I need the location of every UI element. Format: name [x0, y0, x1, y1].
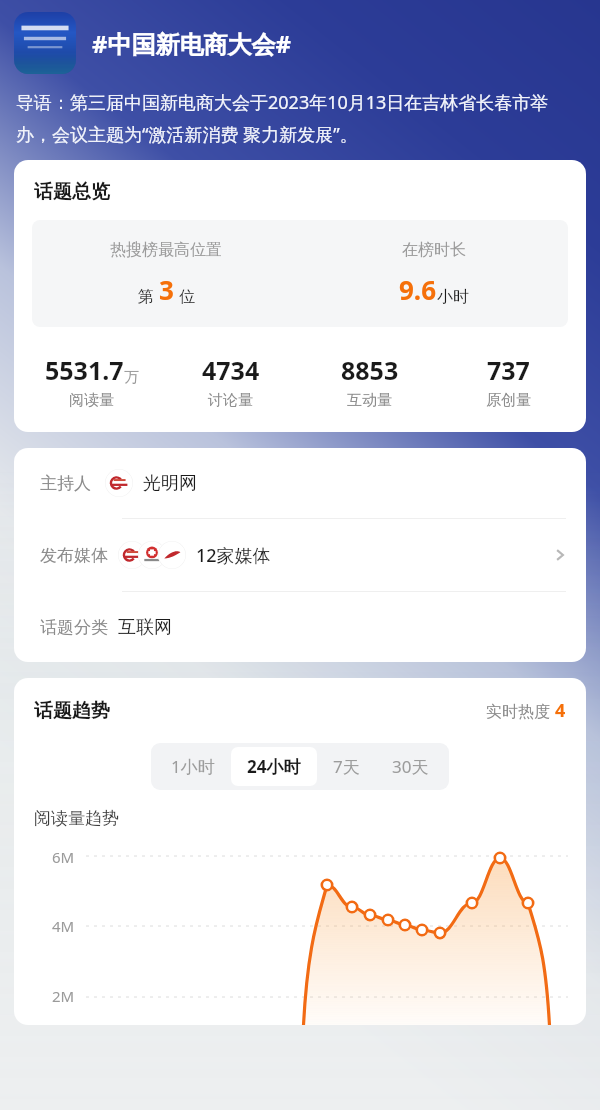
- staticText: 4M: [52, 916, 75, 936]
- button[interactable]: 主持人: [14, 448, 586, 518]
- staticText: 阅读量: [69, 391, 114, 410]
- staticText: 9.6: [399, 272, 437, 307]
- staticText: 8853: [341, 353, 399, 387]
- staticText: 第: [138, 287, 154, 307]
- staticText: 24小时: [247, 755, 301, 778]
- staticText: #中国新电商大会#: [92, 27, 292, 60]
- button[interactable]: 24小时: [231, 747, 317, 786]
- staticText: 737: [487, 353, 530, 387]
- staticText: 导语：第三届中国新电商大会于2023年10月13日在吉林省长春市举办，会议主题为…: [16, 90, 584, 146]
- staticText: 6M: [52, 847, 75, 867]
- staticText: 3: [159, 272, 174, 307]
- button[interactable]: 话题分类: [14, 592, 586, 662]
- staticText: 话题分类: [40, 617, 108, 638]
- staticText: 5531.7: [45, 353, 124, 387]
- staticText: 在榜时长: [402, 240, 466, 260]
- button[interactable]: 7天: [317, 747, 376, 786]
- staticText: 12家媒体: [196, 543, 271, 568]
- staticText: 互联网: [118, 616, 172, 639]
- staticText: 原创量: [486, 391, 531, 410]
- staticText: 阅读量趋势: [34, 808, 119, 829]
- staticText: 发布媒体: [40, 545, 108, 566]
- staticText: 1小时: [171, 755, 215, 778]
- staticText: 话题总览: [34, 180, 110, 204]
- staticText: 话题趋势: [34, 699, 110, 723]
- staticText: 光明网: [143, 472, 197, 495]
- staticText: 4: [555, 698, 566, 723]
- staticText: 7天: [333, 755, 360, 778]
- staticText: 万: [124, 368, 139, 387]
- staticText: 热搜榜最高位置: [110, 240, 222, 260]
- staticText: 30天: [392, 755, 429, 778]
- staticText: 实时热度: [486, 700, 555, 722]
- staticText: 2M: [52, 986, 75, 1006]
- staticText: 互动量: [347, 391, 392, 410]
- staticText: 位: [179, 287, 195, 307]
- staticText: 讨论量: [208, 391, 253, 410]
- button[interactable]: 1小时: [155, 747, 231, 786]
- button[interactable]: 发布媒体: [14, 519, 586, 591]
- staticText: 4734: [202, 353, 260, 387]
- other: 查看更多媒体: [552, 547, 568, 563]
- button[interactable]: 30天: [376, 747, 445, 786]
- staticText: 主持人: [40, 473, 91, 494]
- staticText: 小时: [437, 287, 469, 307]
